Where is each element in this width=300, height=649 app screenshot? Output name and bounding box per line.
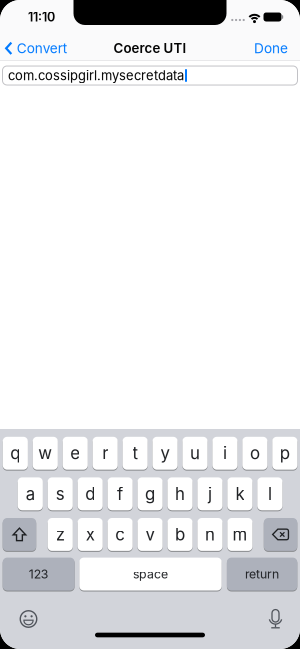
button[interactable]: return: [227, 557, 297, 591]
staticText: z: [56, 524, 65, 545]
button[interactable]: i: [212, 436, 237, 471]
staticText: y: [160, 443, 169, 463]
button[interactable]: Done: [254, 40, 288, 57]
staticText: e: [70, 443, 80, 463]
staticText: k: [235, 484, 244, 504]
staticText: s: [56, 484, 65, 504]
button[interactable]: v: [137, 517, 163, 552]
button[interactable]: Dictation: [262, 606, 288, 632]
staticText: Coerce UTI: [113, 40, 186, 56]
button[interactable]: o: [242, 436, 267, 471]
staticText: w: [38, 443, 52, 463]
button[interactable]: Emoji: [15, 606, 41, 632]
staticText: n: [205, 524, 215, 545]
button[interactable]: space: [79, 557, 222, 591]
staticText: 11:10: [28, 9, 55, 25]
staticText: o: [250, 443, 260, 463]
button[interactable]: Delete: [264, 517, 297, 552]
staticText: l: [268, 484, 272, 504]
button[interactable]: c: [107, 517, 133, 552]
button[interactable]: l: [257, 476, 282, 511]
staticText: b: [175, 524, 185, 545]
staticText: 123: [29, 567, 49, 581]
button[interactable]: r: [92, 436, 118, 471]
button[interactable]: z: [48, 517, 73, 552]
staticText: h: [175, 484, 185, 504]
button[interactable]: Back: [5, 40, 67, 57]
button[interactable]: w: [33, 436, 58, 471]
staticText: f: [117, 484, 123, 504]
staticText: com.cossipgirl.mysecretdata: [8, 68, 184, 83]
button[interactable]: e: [63, 436, 88, 471]
staticText: i: [223, 443, 227, 463]
button[interactable]: p: [272, 436, 297, 471]
button[interactable]: x: [78, 517, 103, 552]
staticText: d: [85, 484, 95, 504]
button[interactable]: s: [48, 476, 73, 511]
button[interactable]: UTI text field: [2, 66, 297, 85]
staticText: u: [190, 443, 200, 463]
button[interactable]: m: [227, 517, 252, 552]
button[interactable]: 123: [3, 557, 75, 591]
staticText: m: [232, 524, 247, 545]
staticText: p: [280, 443, 290, 463]
button[interactable]: k: [227, 476, 252, 511]
button[interactable]: a: [18, 476, 43, 511]
staticText: x: [86, 524, 95, 545]
button[interactable]: f: [107, 476, 133, 511]
staticText: g: [145, 484, 155, 504]
staticText: Done: [254, 40, 288, 57]
button[interactable]: Shift: [3, 517, 36, 552]
staticText: Convert: [17, 40, 67, 57]
button[interactable]: j: [197, 476, 223, 511]
staticText: v: [146, 524, 155, 545]
staticText: space: [133, 567, 168, 581]
staticText: q: [10, 443, 20, 463]
staticText: t: [133, 443, 138, 463]
button[interactable]: b: [167, 517, 193, 552]
button[interactable]: q: [3, 436, 28, 471]
button[interactable]: n: [197, 517, 223, 552]
button[interactable]: h: [167, 476, 193, 511]
staticText: return: [245, 567, 279, 581]
staticText: a: [26, 484, 35, 504]
button[interactable]: y: [152, 436, 178, 471]
button[interactable]: t: [122, 436, 148, 471]
staticText: r: [102, 443, 108, 463]
staticText: c: [115, 524, 125, 545]
button[interactable]: d: [78, 476, 103, 511]
staticText: j: [208, 484, 212, 504]
button[interactable]: u: [182, 436, 208, 471]
button[interactable]: g: [137, 476, 163, 511]
